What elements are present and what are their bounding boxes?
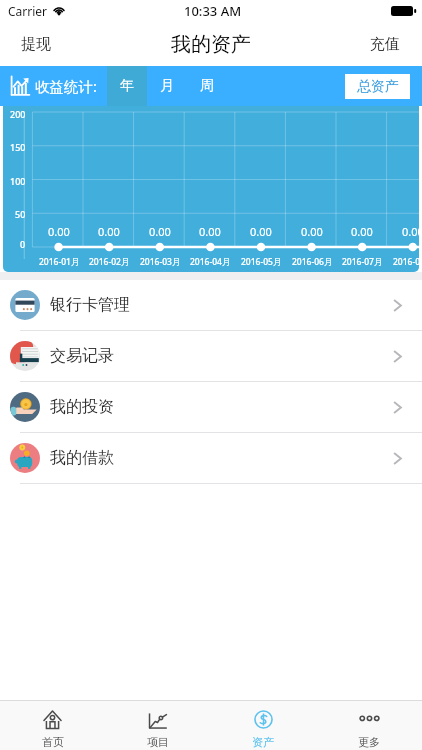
staticText: 我的资产 bbox=[171, 32, 251, 57]
button[interactable]: 提现 bbox=[0, 22, 65, 66]
staticText: 10:33 AM bbox=[184, 2, 242, 20]
button[interactable]: 充值 bbox=[356, 22, 422, 66]
staticText: 资产 bbox=[252, 735, 274, 749]
button[interactable]: 资产 bbox=[210, 701, 316, 750]
staticText: 交易记录 bbox=[50, 346, 114, 366]
staticText: 50 bbox=[15, 208, 26, 220]
staticText: 2016-06月 bbox=[292, 256, 333, 268]
staticText: 年 bbox=[120, 77, 134, 95]
staticText: 100 bbox=[10, 175, 26, 187]
staticText: Carrier bbox=[8, 3, 48, 19]
staticText: 充值 bbox=[370, 35, 400, 54]
staticText: 2016-03月 bbox=[140, 256, 181, 268]
other: 收益统计 bbox=[10, 76, 30, 96]
staticText: 0.00 bbox=[199, 224, 221, 239]
button[interactable]: 总资产 bbox=[345, 74, 410, 99]
staticText: 2016-05月 bbox=[241, 256, 282, 268]
staticText: 0.00 bbox=[301, 224, 323, 239]
staticText: 我的投资 bbox=[50, 397, 114, 417]
button[interactable]: 周 bbox=[187, 66, 227, 106]
staticText: 月 bbox=[160, 77, 174, 95]
button[interactable]: 首页 bbox=[0, 701, 105, 750]
staticText: 200 bbox=[10, 108, 26, 120]
staticText: 0.00 bbox=[351, 224, 373, 239]
staticText: 2016-04月 bbox=[190, 256, 231, 268]
staticText: 周 bbox=[200, 77, 214, 95]
staticText: 2016-02月 bbox=[89, 256, 130, 268]
button[interactable]: 更多 bbox=[316, 701, 422, 750]
button[interactable]: 年 bbox=[107, 66, 147, 106]
staticText: 2016-08月 bbox=[393, 256, 419, 268]
staticText: 提现 bbox=[21, 35, 51, 54]
staticText: 总资产 bbox=[357, 78, 399, 96]
button[interactable]: 我的借款 bbox=[0, 433, 422, 483]
staticText: 项目 bbox=[147, 735, 169, 749]
staticText: 150 bbox=[10, 141, 26, 153]
staticText: 收益统计: bbox=[35, 76, 97, 96]
staticText: 0.00 bbox=[250, 224, 272, 239]
button[interactable]: 银行卡管理 bbox=[0, 280, 422, 330]
staticText: 0.00 bbox=[402, 224, 419, 239]
staticText: 更多 bbox=[358, 735, 380, 749]
staticText: 我的借款 bbox=[50, 448, 114, 468]
button[interactable]: 交易记录 bbox=[0, 331, 422, 381]
staticText: 0.00 bbox=[98, 224, 120, 239]
button[interactable]: 项目 bbox=[105, 701, 210, 750]
button[interactable]: 月 bbox=[147, 66, 187, 106]
button[interactable]: 我的投资 bbox=[0, 382, 422, 432]
staticText: 2016-01月 bbox=[39, 256, 80, 268]
staticText: 银行卡管理 bbox=[50, 295, 130, 315]
staticText: 首页 bbox=[42, 735, 64, 749]
staticText: 0 bbox=[20, 238, 26, 250]
staticText: 2016-07月 bbox=[342, 256, 383, 268]
staticText: 0.00 bbox=[48, 224, 70, 239]
staticText: 0.00 bbox=[149, 224, 171, 239]
